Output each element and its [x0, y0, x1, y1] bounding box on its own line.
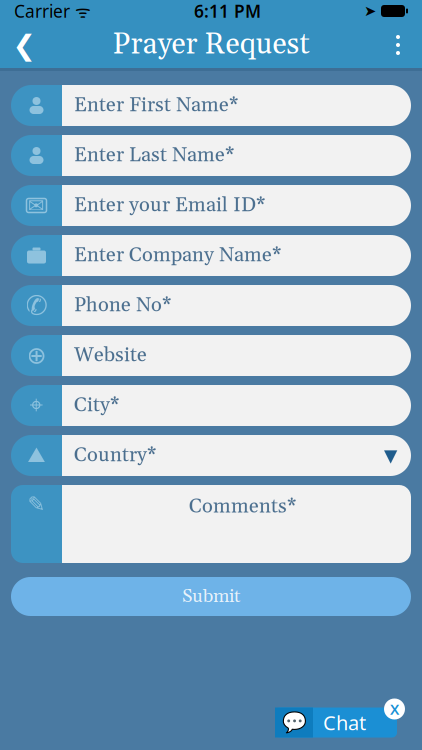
button[interactable]: Close chat	[384, 698, 405, 719]
button[interactable]: ✉	[11, 185, 411, 226]
staticText: ⛰	[27, 445, 45, 466]
staticText: ✆	[25, 290, 47, 321]
staticText: ✉	[28, 194, 45, 217]
staticText: 6:11 PM	[194, 0, 261, 22]
staticText: ❮	[12, 29, 35, 61]
staticText: ⌖	[29, 394, 43, 417]
staticText: Website	[74, 343, 147, 368]
button[interactable]: ⊕	[11, 335, 411, 376]
staticText: Phone No*	[74, 293, 171, 318]
staticText: Prayer Request	[112, 26, 309, 64]
staticText: X	[390, 699, 399, 719]
staticText: Carrier	[14, 0, 70, 22]
staticText: City*	[74, 393, 119, 418]
staticText: Comments*	[189, 494, 296, 519]
staticText: Submit	[182, 585, 240, 608]
button[interactable]: Submit	[11, 577, 411, 616]
staticText: ➤	[364, 3, 376, 19]
staticText: ᯤ	[70, 0, 91, 22]
staticText: Enter First Name*	[74, 93, 238, 118]
staticText: Enter your Email ID*	[74, 193, 265, 218]
staticText: Country*	[74, 443, 156, 468]
staticText: Chat	[323, 709, 366, 736]
button[interactable]: ⌖	[11, 385, 411, 426]
button[interactable]: 💬	[275, 707, 397, 737]
button[interactable]: More options	[376, 23, 420, 67]
button[interactable]: Enter Company Name*	[11, 235, 411, 276]
button[interactable]: Enter Last Name*	[11, 135, 411, 176]
button[interactable]: ✎	[11, 485, 411, 563]
staticText: 💬	[281, 711, 306, 734]
staticText: Enter Company Name*	[74, 243, 281, 268]
staticText: ▼	[384, 446, 397, 465]
button[interactable]: ⛰	[11, 435, 411, 476]
button[interactable]: Enter First Name*	[11, 85, 411, 126]
button[interactable]: Back	[2, 23, 46, 67]
staticText: Enter Last Name*	[74, 143, 234, 168]
staticText: ⊕	[26, 342, 46, 369]
button[interactable]: ✆	[11, 285, 411, 326]
staticText: ✎	[27, 492, 45, 516]
